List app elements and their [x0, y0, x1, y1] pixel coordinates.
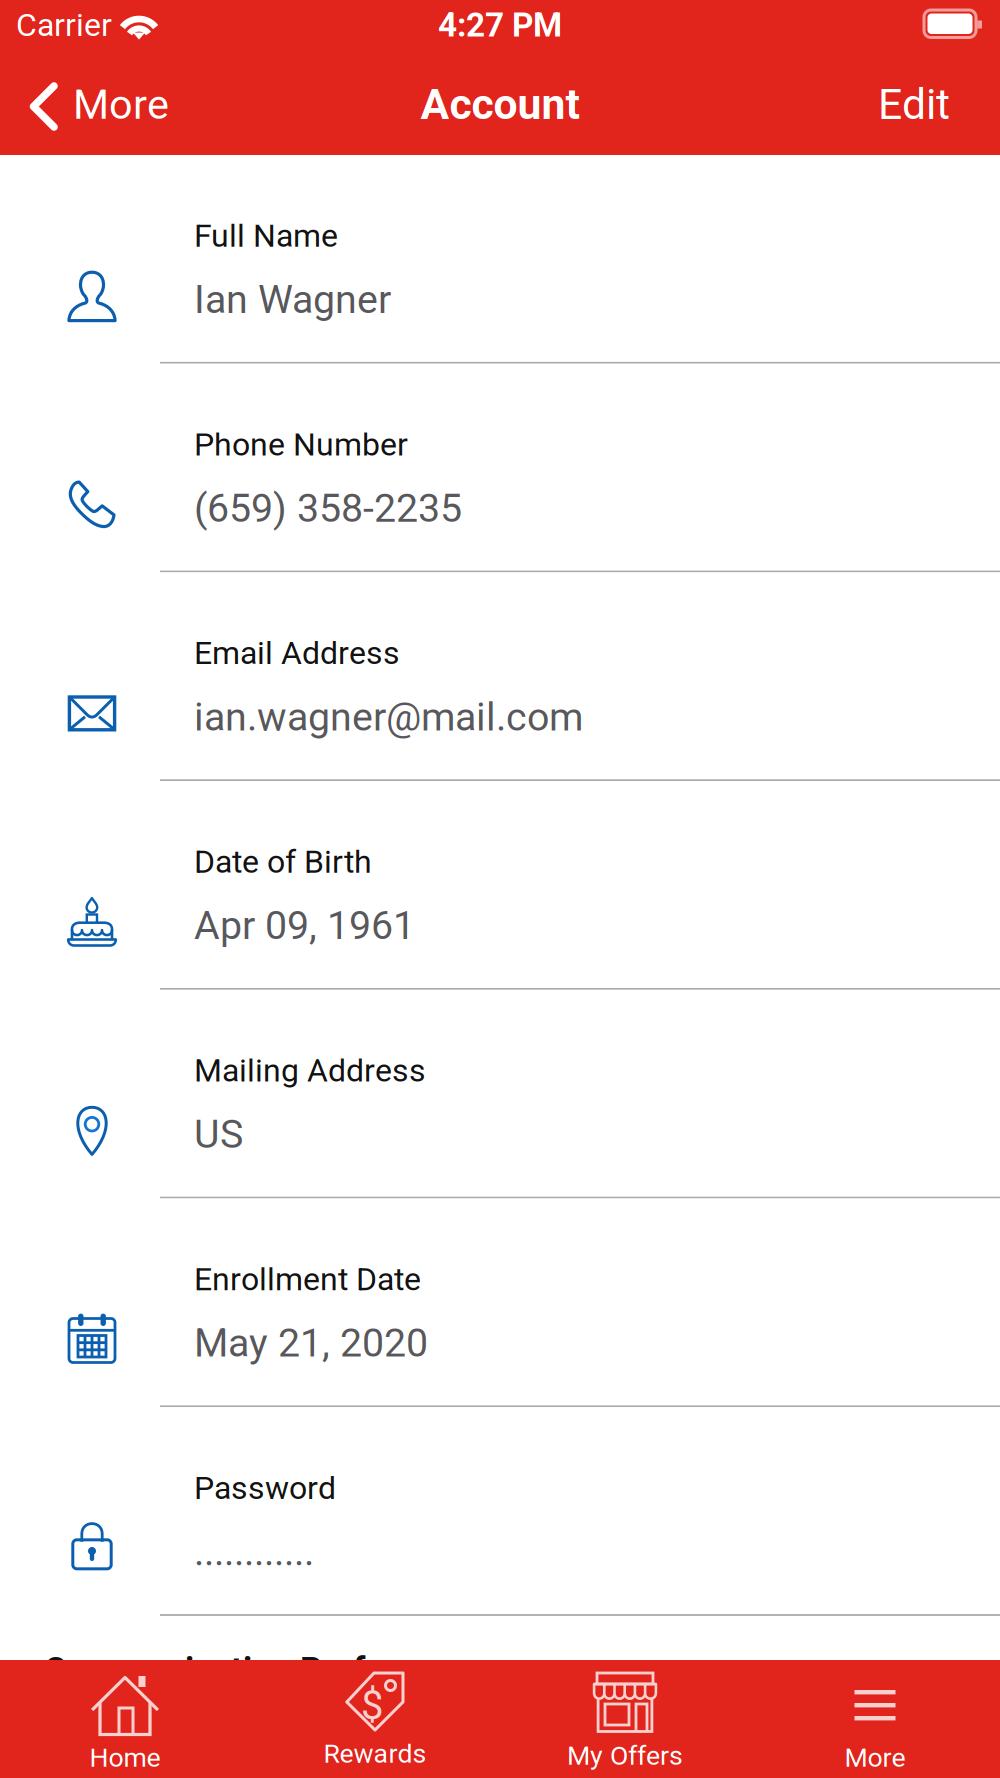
staticText: Date of Birth: [194, 843, 372, 881]
staticText: My Offers: [567, 1740, 683, 1771]
staticText: ian.wagner@mail.com: [194, 694, 583, 740]
button[interactable]: Phone Number: [0, 364, 1000, 572]
button[interactable]: Mailing Address: [0, 990, 1000, 1198]
staticText: Full Name: [194, 217, 338, 254]
staticText: Rewards: [323, 1738, 426, 1769]
staticText: Password: [194, 1469, 336, 1507]
staticText: Ian Wagner: [194, 276, 391, 323]
staticText: Apr 09, 1961: [194, 903, 415, 949]
staticText: Home: [89, 1742, 160, 1773]
staticText: More: [73, 80, 169, 129]
staticText: Enrollment Date: [194, 1260, 421, 1298]
staticText: Carrier: [16, 6, 112, 44]
button[interactable]: Date of Birth: [0, 781, 1000, 990]
staticText: $: [361, 1682, 383, 1729]
button[interactable]: My Offers: [500, 1660, 750, 1778]
staticText: US: [194, 1111, 243, 1157]
staticText: Communication Preferences: [44, 1650, 489, 1690]
staticText: More: [844, 1742, 905, 1773]
staticText: Email Address: [194, 634, 400, 672]
staticText: 4:27 PM: [438, 5, 562, 45]
staticText: (659) 358-2235: [194, 485, 462, 531]
staticText: May 21, 2020: [194, 1320, 428, 1366]
staticText: Edit: [878, 79, 950, 129]
staticText: ............: [194, 1529, 314, 1575]
button[interactable]: $: [250, 1660, 500, 1778]
button[interactable]: Password: [0, 1407, 1000, 1616]
button[interactable]: Email Address: [0, 572, 1000, 781]
staticText: Account: [420, 79, 579, 129]
button[interactable]: More: [0, 58, 185, 155]
staticText: Mailing Address: [194, 1052, 426, 1089]
button[interactable]: Home: [0, 1660, 250, 1778]
staticText: Phone Number: [194, 426, 408, 463]
button[interactable]: Edit: [850, 58, 1000, 155]
button[interactable]: Full Name: [0, 155, 1000, 364]
button[interactable]: Enrollment Date: [0, 1198, 1000, 1407]
button[interactable]: More: [750, 1660, 1000, 1778]
